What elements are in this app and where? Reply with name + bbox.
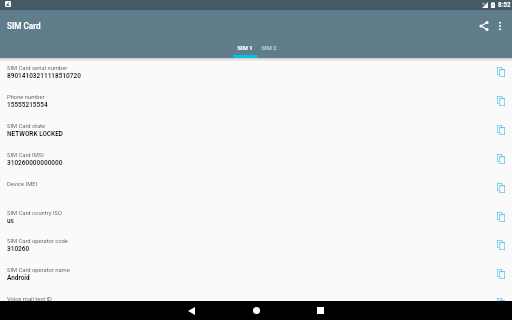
staticText: 310260 (7, 245, 30, 253)
button[interactable]: Recent apps (288, 301, 352, 320)
button[interactable]: Copy (492, 236, 510, 254)
button[interactable]: SIM 1 (233, 35, 257, 58)
button[interactable]: Copy (492, 63, 510, 81)
button[interactable]: More options (489, 15, 510, 36)
staticText: SIM Card serial number (7, 65, 68, 72)
staticText: Phone number (7, 94, 45, 101)
button[interactable]: SIM Card state (0, 118, 512, 147)
staticText: 89014103211118510720 (7, 72, 81, 80)
button[interactable]: Voice mail text ID (0, 291, 512, 320)
staticText: NETWORK LOCKED (7, 130, 63, 138)
staticText: us (7, 217, 14, 225)
staticText: SIM 2 (257, 45, 281, 52)
button[interactable]: SIM Card operator code (0, 233, 512, 262)
staticText: SIM Card (7, 21, 41, 31)
staticText: 8:52 (498, 1, 511, 9)
staticText: Device IMEI (7, 181, 38, 188)
button[interactable]: SIM Card IMSI (0, 147, 512, 176)
staticText: SIM Card IMSI (7, 152, 44, 159)
button[interactable]: Device IMEI (0, 176, 512, 205)
button[interactable]: Copy (492, 265, 510, 283)
button[interactable]: Home (224, 301, 288, 320)
button[interactable]: Copy (492, 294, 510, 312)
button[interactable]: Copy (492, 92, 510, 110)
button[interactable]: SIM 2 (257, 35, 281, 58)
staticText: SIM Card country ISO (7, 210, 62, 217)
staticText: SIM Card operator code (7, 238, 68, 245)
button[interactable]: Copy (492, 121, 510, 139)
staticText: Voice mail text ID (7, 296, 52, 303)
staticText: 15555215554 (7, 101, 48, 109)
button[interactable]: Share (473, 15, 494, 36)
button[interactable]: Copy (492, 208, 510, 226)
button[interactable]: SIM Card serial number (0, 60, 512, 89)
button[interactable]: Copy (492, 150, 510, 168)
button[interactable]: SIM Card operator name (0, 262, 512, 291)
staticText: SIM Card operator name (7, 267, 70, 274)
button[interactable]: Back (159, 301, 223, 320)
button[interactable]: Copy (492, 179, 510, 197)
staticText: Android (7, 274, 30, 282)
staticText: 310260000000000 (7, 159, 63, 167)
button[interactable]: Phone number (0, 89, 512, 118)
staticText: SIM 1 (233, 45, 257, 52)
button[interactable]: SIM Card country ISO (0, 205, 512, 234)
staticText: SIM Card state (7, 123, 46, 130)
